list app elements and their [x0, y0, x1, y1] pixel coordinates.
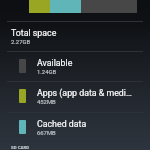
- button[interactable]: Apps (app data & media content): [0, 82, 150, 112]
- button[interactable]: Available: [0, 52, 150, 81]
- staticText: SD CARD: [11, 145, 30, 150]
- staticText: Available: [37, 58, 73, 68]
- staticText: 1.24GB: [37, 69, 57, 76]
- staticText: 667MB: [37, 130, 56, 137]
- button[interactable]: Total space: [0, 22, 150, 51]
- staticText: 452MB: [37, 99, 56, 106]
- staticText: Cached data: [37, 119, 87, 129]
- staticText: Apps (app data & media content): [37, 88, 132, 98]
- staticText: Total space: [11, 28, 57, 38]
- button[interactable]: Cached data: [0, 113, 150, 143]
- staticText: 2.27GB: [11, 39, 31, 46]
